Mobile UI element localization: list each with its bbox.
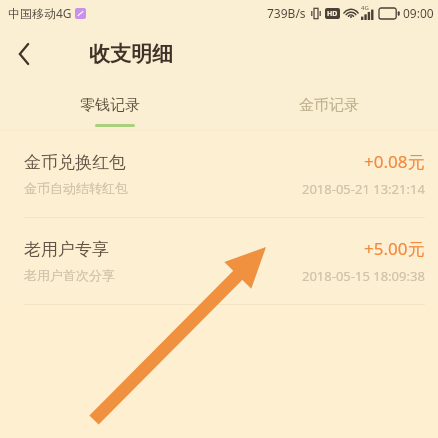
- button[interactable]: 金币记录: [219, 81, 438, 130]
- staticText: 中国移动4G: [8, 5, 72, 21]
- staticText: 4G: [361, 4, 369, 12]
- staticText: 739B/s: [267, 5, 306, 21]
- staticText: 金币自动结转红包: [24, 180, 128, 196]
- staticText: HD: [327, 9, 338, 19]
- staticText: 09:00: [403, 5, 434, 21]
- staticText: 零钱记录: [80, 96, 140, 115]
- staticText: 2018-05-21 13:21:14: [302, 180, 425, 198]
- staticText: +5.00元: [364, 237, 425, 260]
- button[interactable]: 金币兑换红包: [0, 131, 438, 217]
- staticText: +0.08元: [364, 150, 425, 173]
- staticText: 金币记录: [299, 96, 359, 115]
- staticText: 收支明细: [89, 41, 173, 67]
- button[interactable]: 老用户专享: [0, 218, 438, 304]
- staticText: 老用户专享: [24, 239, 109, 260]
- staticText: 金币兑换红包: [24, 152, 126, 173]
- staticText: 老用户首次分享: [24, 267, 115, 283]
- button[interactable]: Back: [0, 30, 48, 78]
- button[interactable]: 零钱记录: [0, 81, 219, 130]
- staticText: 2018-05-15 18:09:38: [302, 267, 425, 285]
